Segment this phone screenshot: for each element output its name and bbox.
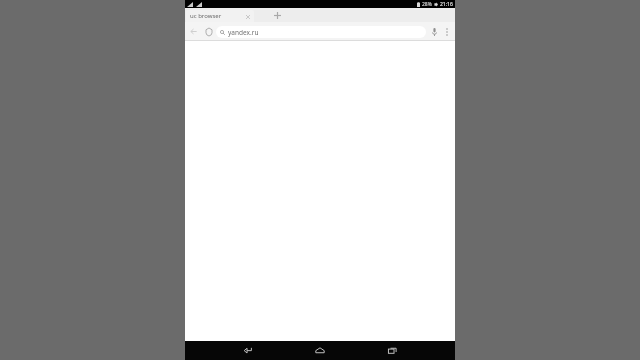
staticText: 21:16 [440,1,453,8]
button[interactable]: Home [306,341,334,360]
button[interactable]: Site security [202,25,215,38]
button[interactable]: Back [187,25,200,38]
staticText: 28% [422,1,432,8]
button[interactable]: yandex.ru [216,26,426,38]
button[interactable]: Back [234,341,262,360]
button[interactable]: Recent apps [378,341,406,360]
button[interactable]: Close tab [244,13,251,20]
button[interactable]: uc browser [186,10,254,22]
staticText: yandex.ru [228,28,259,37]
button[interactable]: More options [441,26,453,38]
button[interactable]: Voice search [428,25,441,38]
button[interactable]: New tab [255,8,299,22]
staticText: uc browser [190,12,222,20]
